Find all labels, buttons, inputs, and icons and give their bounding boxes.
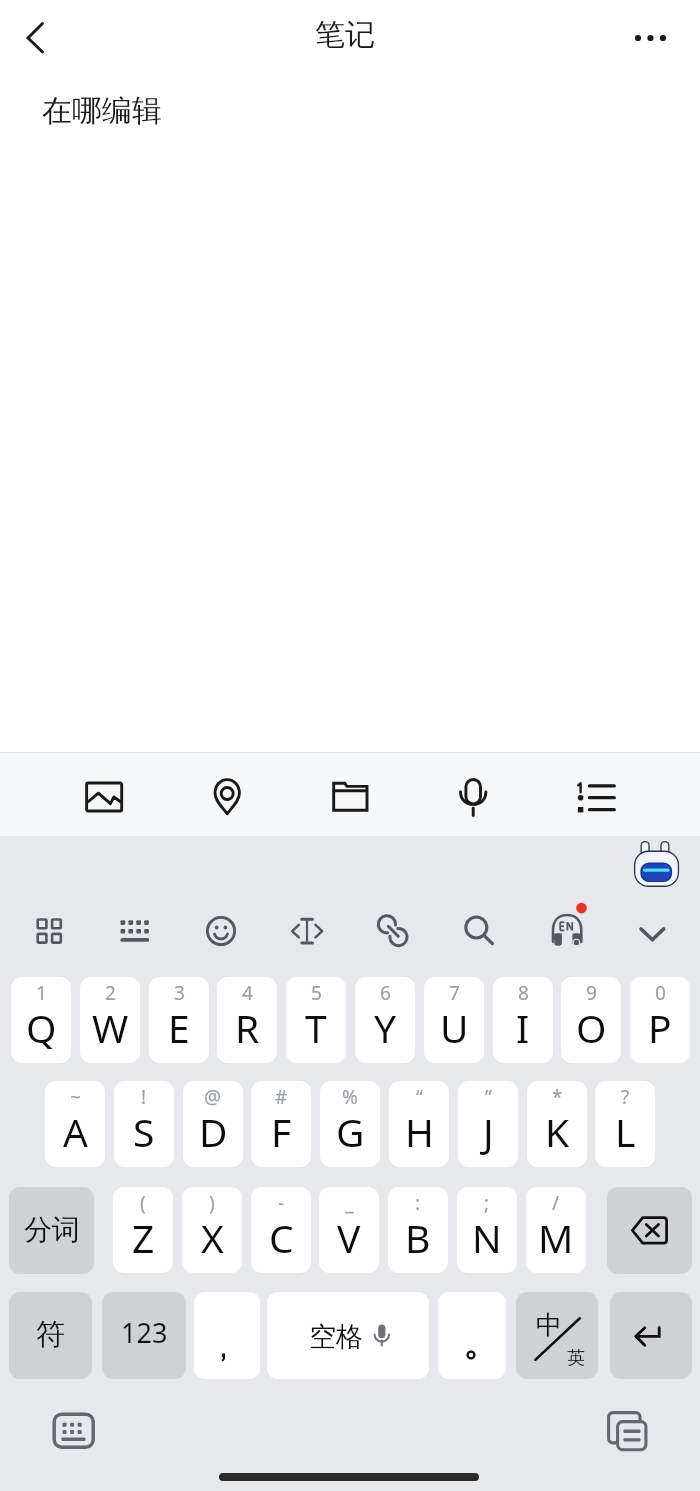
button[interactable]: 1 (11, 977, 71, 1063)
staticText: @ (204, 1084, 222, 1110)
staticText: 0 (655, 980, 666, 1006)
button[interactable]: Numbered list (565, 764, 625, 824)
staticText: 分词 (24, 1212, 80, 1247)
staticText: Q (26, 1001, 57, 1054)
button[interactable]: Emoji (197, 907, 245, 955)
staticText: A (63, 1105, 88, 1158)
staticText: C (269, 1211, 294, 1264)
button[interactable]: Switch input method (44, 1404, 104, 1458)
staticText: 8 (518, 980, 529, 1006)
staticText: 英 (567, 1347, 585, 1370)
button[interactable]: 2 (80, 977, 140, 1063)
button[interactable]: Translate (543, 905, 591, 953)
staticText: 空格 (309, 1320, 363, 1354)
staticText: ? (621, 1084, 630, 1110)
button[interactable]: 符 (9, 1292, 92, 1379)
staticText: 5 (311, 980, 322, 1006)
button[interactable]: Enter (610, 1292, 692, 1379)
button[interactable]: ! (114, 1081, 174, 1167)
button[interactable]: # (251, 1081, 311, 1167)
staticText: 4 (242, 980, 253, 1006)
button[interactable]: ? (595, 1081, 655, 1167)
staticText: U (440, 1001, 469, 1054)
button[interactable]: ; (457, 1187, 517, 1273)
staticText: O (576, 1001, 607, 1054)
button[interactable]: / (526, 1187, 586, 1273)
staticText: “ (416, 1084, 423, 1110)
button[interactable]: @ (183, 1081, 243, 1167)
staticText: _ (345, 1190, 354, 1216)
staticText: % (342, 1084, 358, 1110)
button[interactable]: Folder (319, 764, 379, 824)
staticText: ” (485, 1084, 492, 1110)
staticText: H (405, 1105, 434, 1158)
staticText: 7 (449, 980, 460, 1006)
staticText: V (337, 1211, 361, 1264)
button[interactable]: 123 (102, 1292, 186, 1379)
button[interactable]: 4 (217, 977, 277, 1063)
button[interactable]: Location (196, 764, 256, 824)
button[interactable]: Move cursor (283, 907, 331, 955)
staticText: E (168, 1001, 190, 1054)
staticText: - (278, 1190, 285, 1216)
staticText: T (305, 1001, 327, 1054)
button[interactable]: _ (319, 1187, 379, 1273)
staticText: # (275, 1084, 288, 1110)
staticText: ( (140, 1190, 146, 1216)
button[interactable]: Keyboard panels (25, 907, 73, 955)
button[interactable]: 6 (355, 977, 415, 1063)
staticText: B (405, 1211, 431, 1264)
staticText: 9 (586, 980, 597, 1006)
button[interactable]: Insert image (73, 764, 133, 824)
button[interactable]: Search (453, 907, 501, 955)
staticText: ! (141, 1084, 147, 1110)
button[interactable]: “ (389, 1081, 449, 1167)
staticText: F (271, 1105, 292, 1158)
staticText: ~ (70, 1084, 81, 1110)
button[interactable]: Clipboard (598, 1404, 658, 1458)
button[interactable]: 9 (561, 977, 621, 1063)
staticText: W (92, 1001, 129, 1054)
staticText: I (516, 1001, 530, 1054)
staticText: R (235, 1001, 260, 1054)
staticText: X (201, 1211, 224, 1264)
staticText: N (472, 1211, 502, 1264)
button[interactable]: * (527, 1081, 587, 1167)
button[interactable]: % (320, 1081, 380, 1167)
button[interactable]: ” (458, 1081, 518, 1167)
button[interactable]: Link (369, 907, 417, 955)
button[interactable]: 中 (516, 1292, 598, 1379)
button[interactable]: 空格 (267, 1292, 429, 1379)
button[interactable]: Back (6, 5, 70, 69)
staticText: Y (374, 1001, 397, 1054)
button[interactable]: 7 (424, 977, 484, 1063)
staticText: ) (209, 1190, 215, 1216)
staticText: 3 (174, 980, 185, 1006)
staticText: / (552, 1190, 560, 1216)
button[interactable]: - (251, 1187, 311, 1273)
button[interactable]: ( (113, 1187, 173, 1273)
button[interactable]: 5 (286, 977, 346, 1063)
button[interactable]: Full stop (438, 1292, 506, 1379)
staticText: 符 (36, 1316, 65, 1353)
staticText: 6 (380, 980, 391, 1006)
button[interactable]: More options (618, 6, 682, 70)
button[interactable]: 分词 (9, 1187, 94, 1274)
staticText: ; (484, 1190, 490, 1216)
staticText: K (545, 1105, 570, 1158)
staticText: 2 (105, 980, 116, 1006)
button[interactable]: : (388, 1187, 448, 1273)
button[interactable]: Keyboard layout (111, 907, 159, 955)
staticText: D (199, 1105, 228, 1158)
button[interactable]: 3 (149, 977, 209, 1063)
button[interactable]: Hide keyboard (628, 908, 676, 956)
button[interactable]: ~ (45, 1081, 105, 1167)
button[interactable]: Comma (194, 1292, 260, 1379)
button[interactable]: AI assistant (631, 838, 681, 888)
button[interactable]: Voice input (442, 764, 502, 824)
button[interactable]: 8 (493, 977, 553, 1063)
button[interactable]: Backspace (607, 1187, 692, 1274)
staticText: 在哪编辑 (42, 92, 162, 130)
button[interactable]: 0 (630, 977, 690, 1063)
button[interactable]: ) (182, 1187, 242, 1273)
